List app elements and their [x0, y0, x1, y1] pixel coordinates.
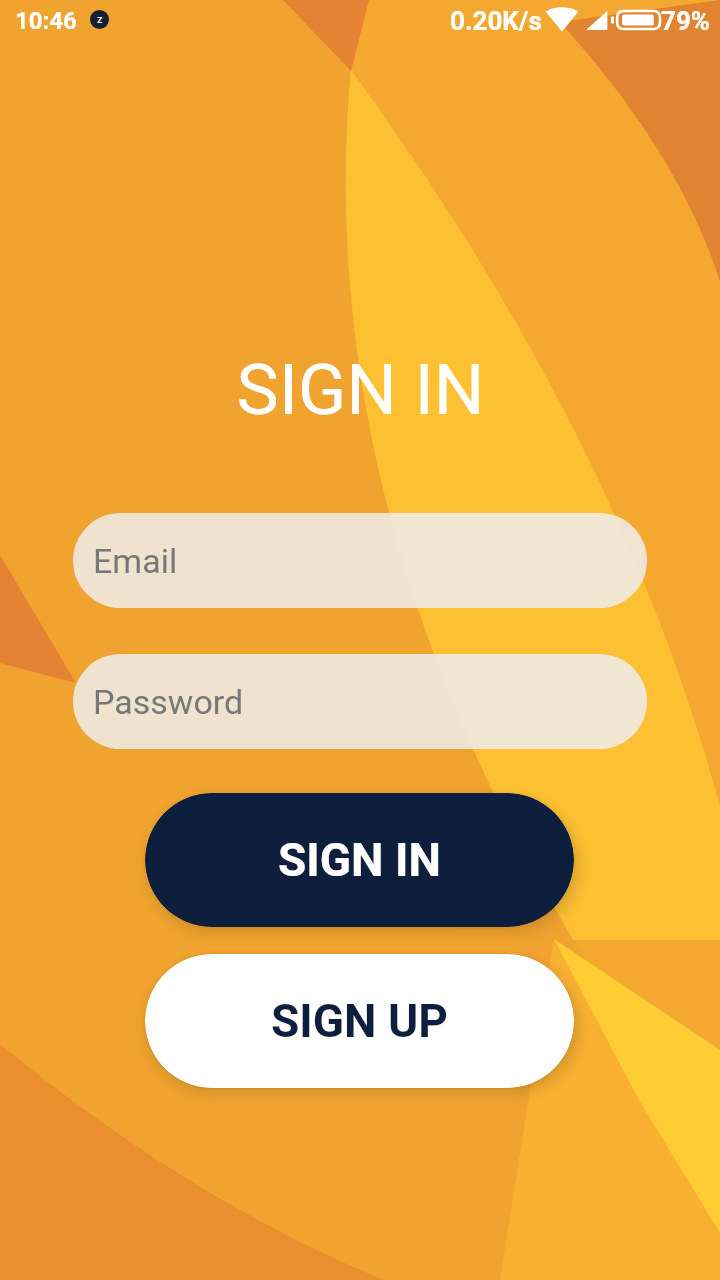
staticText: SIGN UP — [271, 994, 448, 1048]
button[interactable]: Password — [73, 654, 647, 749]
staticText: SIGN IN — [236, 348, 485, 431]
button[interactable]: SIGN UP — [145, 954, 574, 1088]
staticText: 79% — [661, 6, 711, 36]
button[interactable]: SIGN IN — [145, 793, 574, 927]
button[interactable]: Email — [73, 513, 647, 608]
staticText: 0.20K/s — [450, 6, 542, 36]
staticText: Password — [93, 682, 244, 722]
staticText: 10:46 — [15, 7, 77, 35]
other: Wi-Fi — [545, 8, 579, 32]
staticText: z — [97, 13, 103, 26]
staticText: SIGN IN — [278, 833, 441, 887]
staticText: Email — [93, 541, 178, 581]
